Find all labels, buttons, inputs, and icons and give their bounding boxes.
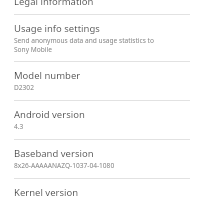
staticText: Sony Mobile bbox=[14, 45, 52, 54]
button[interactable]: Model number bbox=[0, 62, 200, 100]
staticText: Model number bbox=[14, 69, 81, 82]
button[interactable]: Legal information bbox=[0, 0, 200, 14]
staticText: 4.3 bbox=[14, 122, 24, 131]
staticText: Kernel version bbox=[14, 186, 79, 196]
button[interactable]: Usage info settings bbox=[0, 15, 200, 61]
staticText: Baseband version bbox=[14, 147, 94, 160]
button[interactable]: Baseband version bbox=[0, 140, 200, 178]
staticText: 8x26-AAAAANAZQ-1037-04-1080 bbox=[14, 161, 115, 170]
button[interactable]: Kernel version bbox=[0, 179, 200, 200]
staticText: Usage info settings bbox=[14, 22, 100, 35]
staticText: Send anonymous data and usage statistics… bbox=[14, 36, 154, 45]
staticText: D2302 bbox=[14, 83, 34, 92]
staticText: Android version bbox=[14, 108, 85, 121]
button[interactable]: Android version bbox=[0, 101, 200, 139]
staticText: Legal information bbox=[14, 0, 94, 8]
